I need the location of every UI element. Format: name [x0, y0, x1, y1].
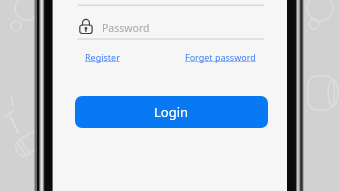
- button[interactable]: Register: [85, 51, 120, 63]
- button[interactable]: Login: [75, 96, 268, 128]
- staticText: Forget password: [185, 51, 256, 63]
- button[interactable]: Forget password: [185, 51, 256, 63]
- staticText: Register: [85, 51, 120, 63]
- button[interactable]: Password: [77, 16, 264, 39]
- staticText: Password: [102, 21, 150, 35]
- staticText: Login: [154, 103, 189, 121]
